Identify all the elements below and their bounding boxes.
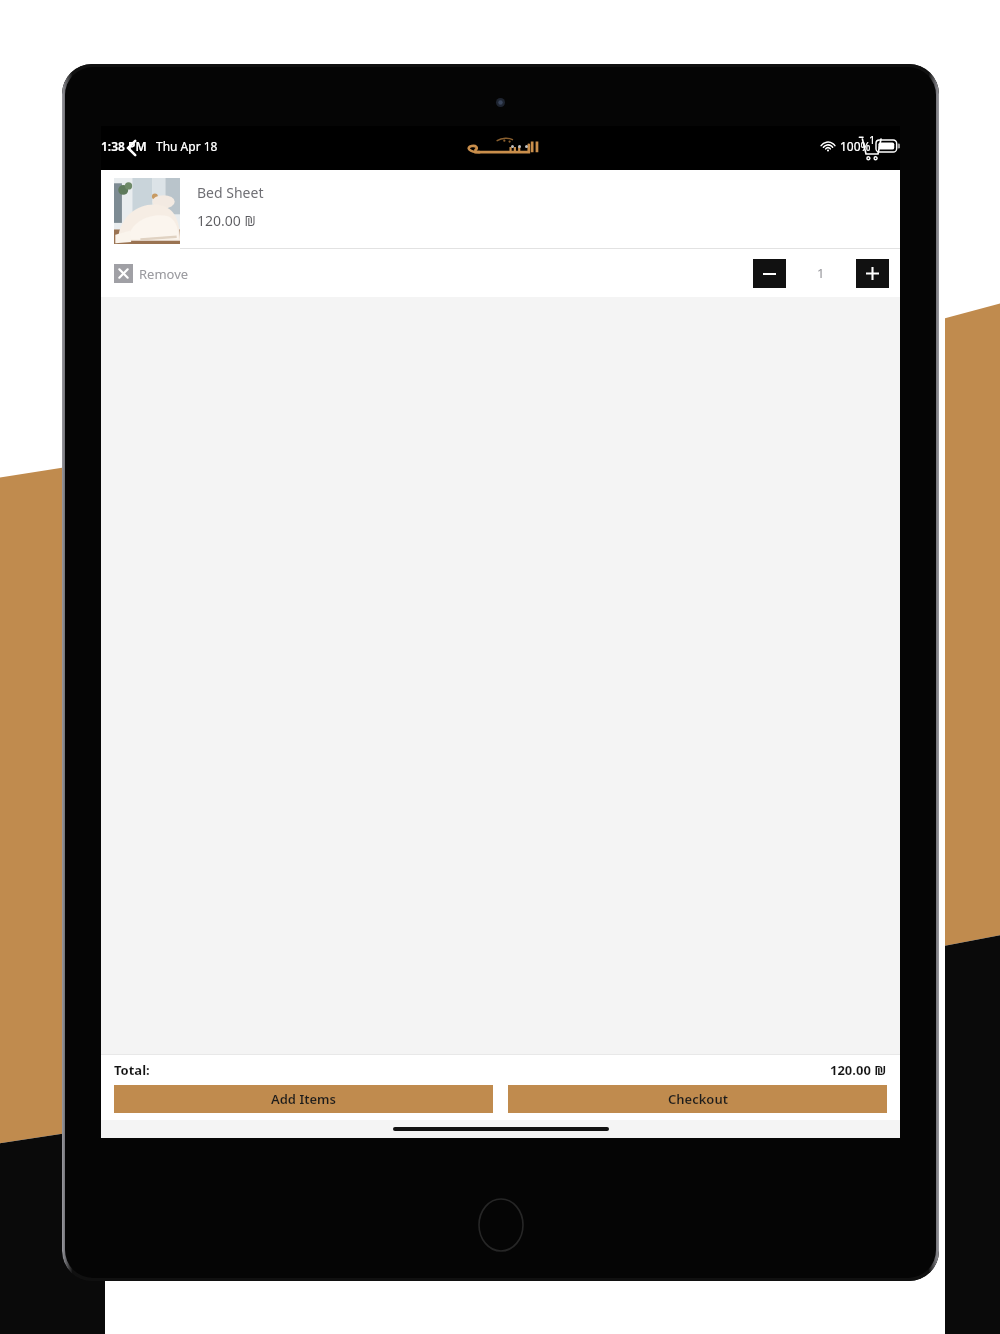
button[interactable]: Checkout [508,1085,887,1113]
staticText: 100% [840,138,871,154]
staticText: 1 [869,132,876,147]
staticText: 120.00 ₪ [197,211,256,230]
staticText: Thu Apr 18 [156,138,218,154]
button[interactable]: Add Items [114,1085,493,1113]
staticText: Bed Sheet [197,183,264,202]
button[interactable]: Cart [838,126,900,170]
staticText: Checkout [668,1090,728,1108]
button[interactable]: Back [101,126,163,170]
button[interactable]: Bed Sheet [101,170,900,248]
staticText: 120.00 ₪ [830,1061,887,1079]
staticText: 1 [817,264,825,282]
button[interactable]: Decrease quantity [753,259,786,288]
staticText: Add Items [271,1090,336,1108]
other: Cart, 1 item [854,133,884,163]
button[interactable]: Remove [114,264,189,283]
staticText: 1:38 PM [101,138,147,154]
staticText: Remove [139,265,189,283]
staticText: Total: [114,1061,150,1079]
button[interactable]: Increase quantity [856,259,889,288]
